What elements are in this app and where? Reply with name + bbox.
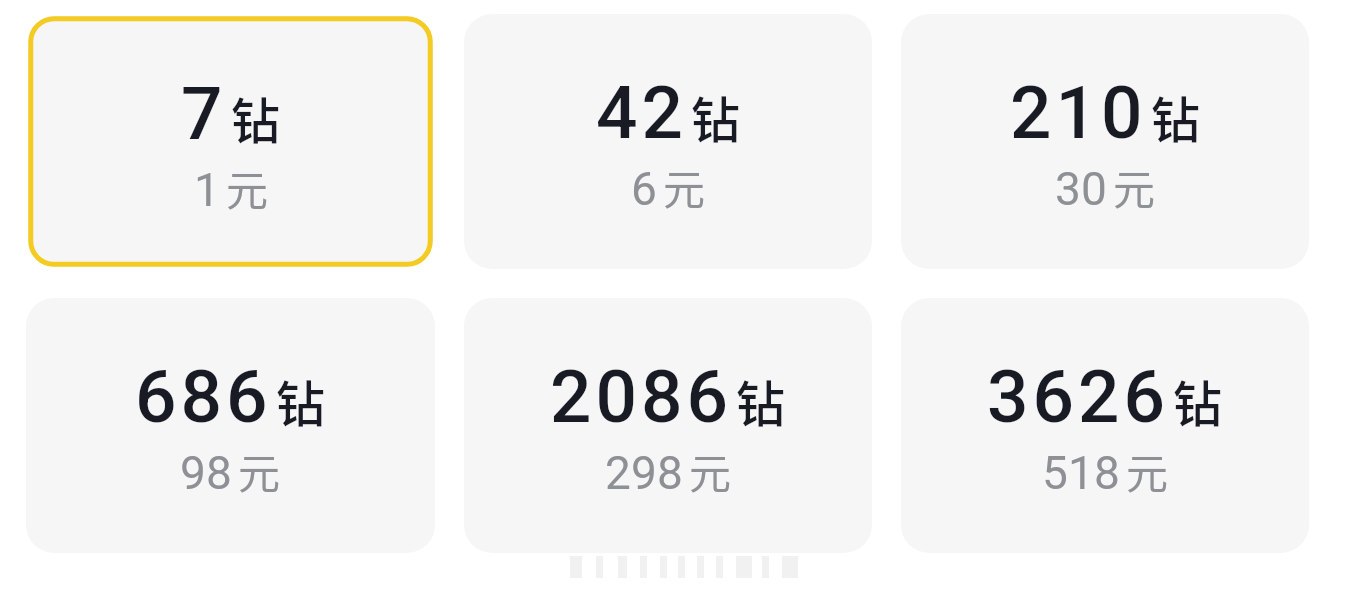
button[interactable]: 42 diamonds for 6 yuan [464,14,872,269]
button[interactable]: 686 diamonds for 98 yuan [26,298,435,553]
staticText: 30 [1055,162,1108,216]
staticText: 1 [194,163,221,217]
staticText: 42 [596,70,687,156]
staticText: 298 [605,446,684,500]
button[interactable]: 7 diamonds for 1 yuan, selected [26,14,435,269]
staticText: 元 [1126,440,1169,501]
staticText: 518 [1042,446,1121,500]
staticText: 钻 [231,82,281,153]
staticText: 元 [238,440,281,501]
button[interactable]: 3626 diamonds for 518 yuan [901,298,1309,553]
staticText: 3626 [987,354,1169,440]
staticText: 钻 [736,365,786,436]
staticText: 钻 [1151,81,1201,152]
staticText: 7 [181,71,227,157]
staticText: 2086 [550,354,732,440]
staticText: 686 [135,354,272,440]
staticText: 元 [663,156,706,217]
staticText: 元 [689,440,732,501]
staticText: 元 [1113,156,1156,217]
staticText: 98 [180,446,233,500]
staticText: 钻 [691,81,741,152]
staticText: 元 [226,157,269,218]
button[interactable]: 2086 diamonds for 298 yuan [464,298,872,553]
staticText: 钻 [276,365,326,436]
staticText: 钻 [1173,365,1223,436]
staticText: 6 [631,162,658,216]
button[interactable]: 210 diamonds for 30 yuan [901,14,1309,269]
staticText: 210 [1010,70,1147,156]
